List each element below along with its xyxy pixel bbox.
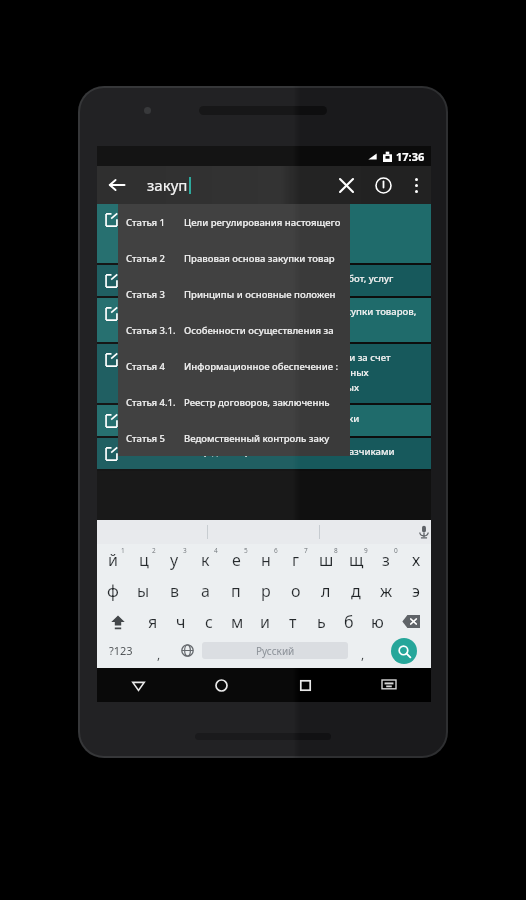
button[interactable]: Статья 3. Принципы и основные положения … (97, 298, 431, 342)
staticText: Русский (256, 644, 295, 658)
button[interactable]: Voice input (320, 520, 431, 544)
staticText: 4 (214, 546, 218, 555)
button[interactable]: Статья 3 (118, 276, 350, 312)
button[interactable]: , (348, 637, 377, 664)
button[interactable]: я (138, 606, 167, 637)
button[interactable]: ь (307, 606, 335, 637)
button[interactable]: More options (401, 166, 431, 204)
staticText: Реестр договоров, заключеннь (184, 396, 330, 409)
staticText: ч (176, 611, 186, 633)
button[interactable]: ф (97, 575, 128, 606)
button[interactable]: , (144, 637, 173, 664)
button[interactable]: 7 (281, 544, 311, 575)
button[interactable]: л (311, 575, 341, 606)
button[interactable]: Clear (327, 166, 365, 204)
button[interactable]: Статья 4. Информационное обеспечение зак… (97, 405, 431, 436)
staticText: 9 (364, 546, 368, 555)
staticText: 3 (183, 546, 187, 555)
button[interactable]: э (401, 575, 431, 606)
staticText: Статья 2. Правовая основа закупки товаро… (126, 272, 394, 285)
button[interactable]: Статья 4.1. (118, 384, 350, 420)
button[interactable]: закуп (137, 166, 327, 204)
button[interactable]: 8 (311, 544, 341, 575)
button[interactable]: 4 (190, 544, 221, 575)
button[interactable]: 6 (251, 544, 281, 575)
button[interactable]: 5 (221, 544, 251, 575)
staticText: Статья 4. Информационное обеспечение зак… (126, 412, 360, 425)
staticText: п (231, 580, 241, 602)
staticText: 6 (274, 546, 278, 555)
button[interactable]: р (251, 575, 281, 606)
button[interactable]: Change language (173, 637, 202, 664)
button[interactable]: Статья 3.1. Особенности осуществления за… (97, 344, 431, 403)
button[interactable]: Home (180, 668, 263, 702)
button[interactable]: м (223, 606, 251, 637)
staticText: ь (317, 611, 326, 633)
button[interactable]: б (335, 606, 363, 637)
button[interactable]: ж (371, 575, 401, 606)
button[interactable]: Shift (97, 606, 138, 637)
staticText: й (108, 549, 118, 571)
button[interactable]: Статья 1 (118, 204, 350, 240)
button[interactable]: п (221, 575, 251, 606)
staticText: 2 (152, 546, 156, 555)
button[interactable]: и (251, 606, 279, 637)
button[interactable]: Статья 5 (118, 420, 350, 456)
button[interactable]: 2 (128, 544, 159, 575)
button[interactable]: ю (363, 606, 391, 637)
staticText: , (361, 646, 365, 662)
button[interactable]: о (281, 575, 311, 606)
staticText: Статья 3 (126, 288, 166, 301)
button[interactable]: Back (97, 668, 180, 702)
staticText: т (289, 611, 297, 633)
button[interactable]: Hide keyboard (347, 668, 431, 702)
button[interactable]: 1 (97, 544, 128, 575)
staticText: Статья 3.1. Особенности осуществления за… (126, 351, 425, 364)
staticText: 17:36 (396, 149, 425, 164)
button[interactable]: ы (128, 575, 159, 606)
button[interactable]: 9 (341, 544, 371, 575)
button[interactable]: ч (167, 606, 195, 637)
staticText: э (412, 580, 420, 602)
button[interactable]: Info (365, 166, 401, 204)
staticText: д (351, 580, 361, 602)
staticText: Статья 3. Принципы и основные положения … (126, 305, 417, 318)
button[interactable]: с (195, 606, 223, 637)
button[interactable]: Статья 2. Правовая основа закупки товаро… (97, 265, 431, 296)
staticText: е (232, 549, 241, 571)
staticText: Правовая основа закупки товар (184, 252, 335, 265)
button[interactable]: Статья 2 (118, 240, 350, 276)
button[interactable]: Search (377, 637, 431, 664)
button[interactable]: Статья 4 (118, 348, 350, 384)
button[interactable]: в (159, 575, 190, 606)
staticText: работ, услуг (126, 320, 183, 333)
staticText: ц (139, 549, 149, 571)
staticText: в (170, 580, 180, 602)
button[interactable]: д (341, 575, 371, 606)
button[interactable]: х (401, 544, 431, 575)
button[interactable]: 0 (371, 544, 401, 575)
staticText: к (201, 549, 210, 571)
staticText: б (344, 611, 354, 633)
button[interactable]: Статья 4.1. Реестр договоров, заключенны… (97, 438, 431, 469)
button[interactable]: Back (97, 166, 137, 204)
button[interactable]: Статья 1. Цели регулирования настоящего (97, 204, 431, 263)
staticText: Принципы и основные положен (184, 288, 336, 301)
button[interactable]: ?123 (97, 637, 144, 664)
staticText: предусмотренных на реализацию инвестицио… (126, 366, 369, 379)
button[interactable]: Русский (202, 642, 348, 659)
staticText: ф (107, 580, 119, 602)
button[interactable]: 3 (159, 544, 190, 575)
staticText: 8 (334, 546, 338, 555)
button[interactable]: а (190, 575, 221, 606)
button[interactable]: Статья 3.1. (118, 312, 350, 348)
staticText: л (321, 580, 331, 602)
staticText: Статья 4 (126, 360, 166, 373)
staticText: закуп (147, 175, 188, 195)
button[interactable]: Delete (391, 606, 431, 637)
button[interactable]: т (279, 606, 307, 637)
button[interactable]: Recents (263, 668, 347, 702)
staticText: ш (319, 549, 334, 571)
